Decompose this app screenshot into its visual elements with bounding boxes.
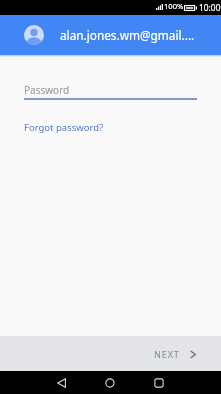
button[interactable]: alan.jones.wm@gmail.... — [0, 15, 221, 55]
staticText: 10:00 — [199, 2, 221, 13]
staticText: NEXT — [154, 348, 180, 360]
staticText: Forgot password? — [24, 121, 104, 134]
button[interactable]: Recent apps — [148, 371, 170, 394]
staticText: Password — [24, 83, 70, 97]
button[interactable]: NEXT — [154, 348, 196, 360]
staticText: 100% — [164, 1, 184, 11]
button[interactable]: Password — [24, 83, 197, 100]
button[interactable]: Back — [50, 371, 72, 394]
button[interactable]: Home — [99, 371, 121, 394]
button[interactable]: Forgot password? — [24, 121, 104, 134]
staticText: alan.jones.wm@gmail.... — [60, 27, 195, 43]
